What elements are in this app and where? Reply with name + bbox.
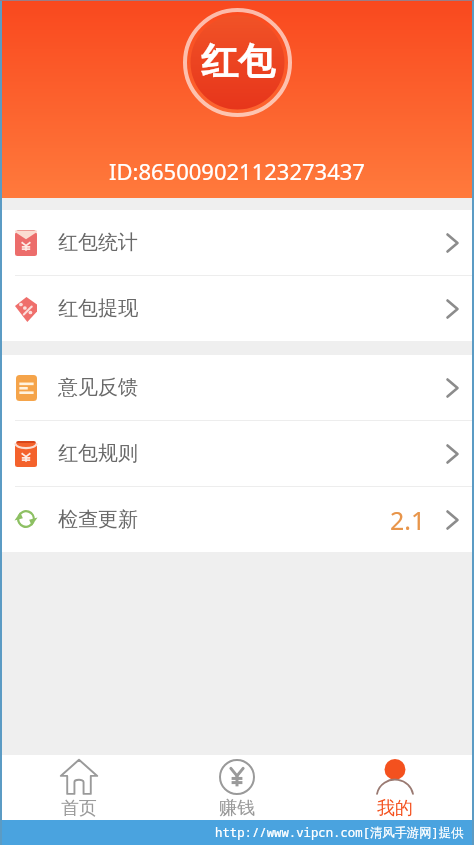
staticText: ID:865009021123273437 bbox=[109, 156, 365, 186]
button[interactable]: 检查更新 bbox=[0, 487, 474, 552]
staticText: http://www.vipcn.com[清风手游网]提供 bbox=[215, 824, 464, 841]
staticText: 红包提现 bbox=[58, 296, 138, 321]
button[interactable]: Earn bbox=[158, 755, 316, 821]
staticText: 红包统计 bbox=[58, 230, 138, 255]
button[interactable]: 红包规则 bbox=[0, 421, 474, 486]
staticText: 红包规则 bbox=[58, 441, 138, 466]
staticText: 我的 bbox=[377, 797, 413, 820]
staticText: 意见反馈 bbox=[58, 375, 138, 400]
staticText: 红包 bbox=[201, 38, 275, 85]
button[interactable]: Home bbox=[0, 755, 158, 821]
button[interactable]: 意见反馈 bbox=[0, 355, 474, 420]
staticText: 检查更新 bbox=[58, 507, 138, 532]
staticText: 赚钱 bbox=[219, 797, 255, 820]
button[interactable]: 红包提现 bbox=[0, 276, 474, 341]
button[interactable]: 红包统计 bbox=[0, 210, 474, 275]
button[interactable]: Mine bbox=[316, 755, 474, 821]
staticText: 2.1 bbox=[390, 503, 426, 537]
staticText: 首页 bbox=[61, 797, 97, 820]
